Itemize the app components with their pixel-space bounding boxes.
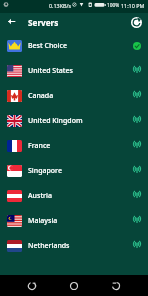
button[interactable]: Recent apps — [106, 276, 126, 296]
staticText: United States — [28, 66, 73, 76]
button[interactable]: Austria — [0, 183, 148, 208]
staticText: Singapore — [28, 166, 62, 176]
staticText: United Kingdom — [28, 116, 83, 126]
staticText: Malaysia — [28, 216, 58, 226]
button[interactable]: United Kingdom — [0, 108, 148, 133]
button[interactable]: Canada — [0, 83, 148, 108]
button[interactable]: United States — [0, 58, 148, 83]
button[interactable]: Back — [22, 276, 42, 296]
staticText: Servers — [28, 17, 59, 28]
button[interactable]: Back — [4, 14, 19, 29]
staticText: Canada — [28, 91, 54, 101]
staticText: 11:10 PM — [121, 2, 145, 9]
button[interactable]: Best Choice — [0, 33, 148, 58]
button[interactable]: Home — [64, 276, 84, 296]
button[interactable]: Refresh — [131, 17, 142, 28]
staticText: France — [28, 141, 51, 151]
button[interactable]: Malaysia — [0, 208, 148, 233]
button[interactable]: Netherlands — [0, 233, 148, 258]
staticText: Austria — [28, 191, 52, 201]
staticText: Netherlands — [28, 241, 70, 251]
button[interactable]: Singapore — [0, 158, 148, 183]
button[interactable]: France — [0, 133, 148, 158]
staticText: 100% — [107, 2, 120, 9]
staticText: Best Choice — [28, 41, 67, 51]
staticText: 0.13KB/s — [49, 2, 72, 9]
